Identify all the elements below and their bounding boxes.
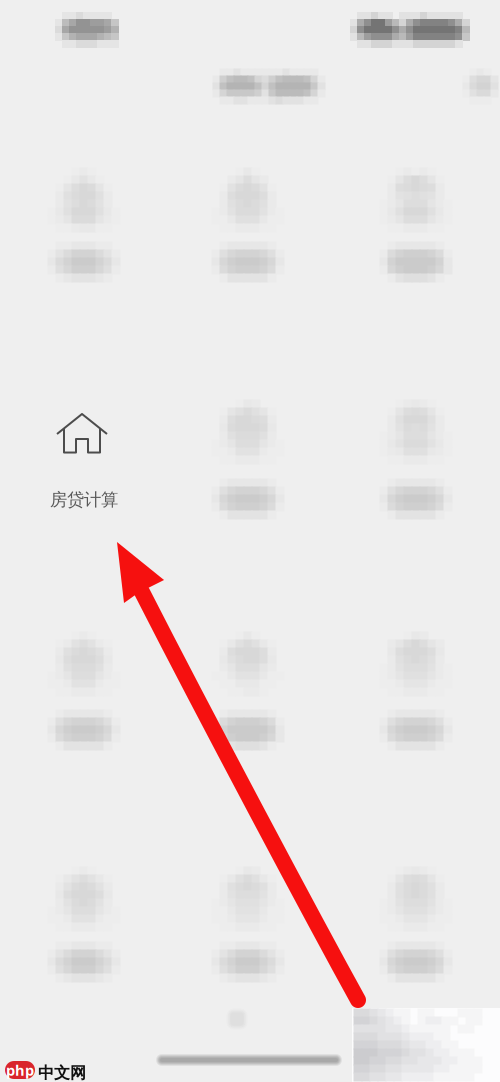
button[interactable]: Page title: [0, 0, 150, 44]
button[interactable]: 房贷计算: [13, 400, 153, 520]
staticText: php: [6, 1060, 34, 1080]
staticText: 中文网: [38, 1063, 86, 1082]
staticText: 房贷计算: [50, 489, 118, 510]
